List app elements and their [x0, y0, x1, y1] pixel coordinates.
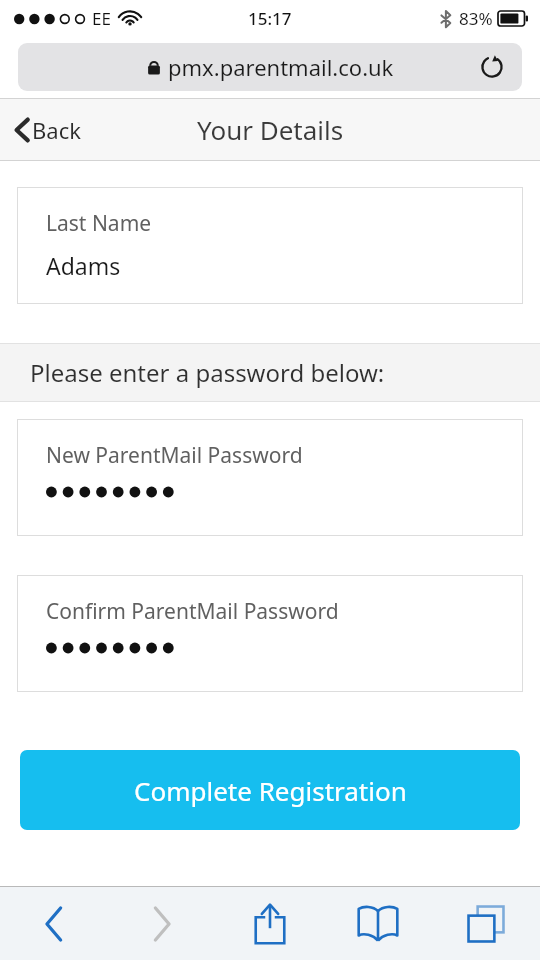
- button[interactable]: Confirm ParentMail Password: [17, 575, 523, 692]
- staticText: Confirm ParentMail Password: [46, 597, 339, 626]
- staticText: Last Name: [46, 209, 152, 238]
- staticText: Please enter a password below:: [30, 356, 385, 389]
- staticText: New ParentMail Password: [46, 441, 303, 470]
- button[interactable]: Last Name: [17, 187, 523, 304]
- button[interactable]: Reload: [474, 49, 510, 85]
- button[interactable]: Back: [10, 109, 85, 151]
- staticText: 15:17: [248, 7, 292, 30]
- staticText: 83%: [459, 7, 493, 30]
- button[interactable]: Share: [216, 887, 324, 960]
- staticText: Your Details: [197, 112, 344, 147]
- button[interactable]: New ParentMail Password: [17, 419, 523, 536]
- staticText: Complete Registration: [134, 773, 407, 808]
- button[interactable]: Back: [0, 887, 108, 960]
- button[interactable]: pmx.parentmail.co.uk: [18, 43, 522, 91]
- staticText: EE: [92, 7, 111, 30]
- staticText: Back: [32, 115, 81, 145]
- button[interactable]: Tabs: [432, 887, 540, 960]
- staticText: pmx.parentmail.co.uk: [168, 52, 394, 82]
- button[interactable]: Complete Registration: [20, 750, 520, 830]
- button[interactable]: Bookmarks: [324, 887, 432, 960]
- staticText: Adams: [46, 250, 121, 281]
- button[interactable]: Forward: [108, 887, 216, 960]
